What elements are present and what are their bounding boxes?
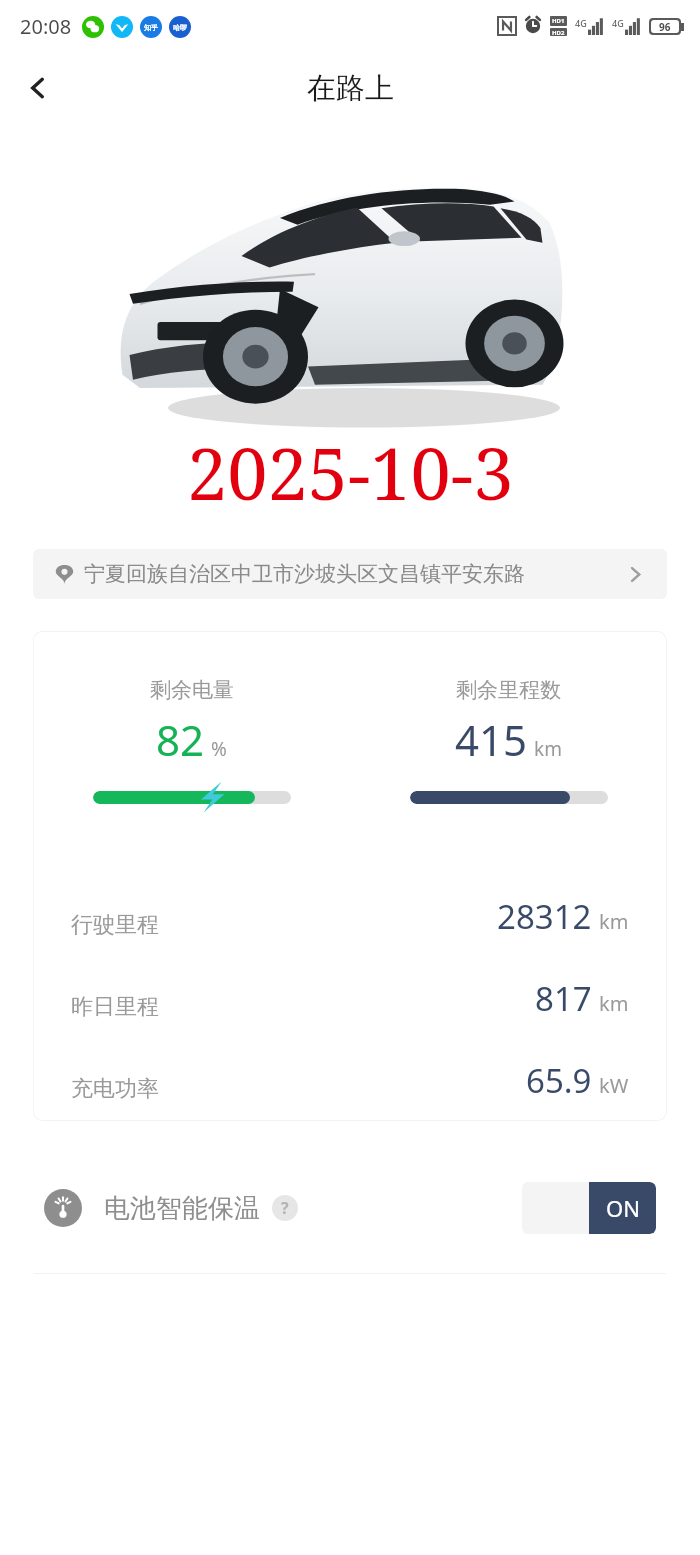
staticText: 宁夏回族自治区中卫市沙坡头区文昌镇平安东路 — [84, 561, 525, 587]
button[interactable]: Help — [272, 1195, 298, 1221]
staticText: 28312 — [497, 894, 592, 939]
staticText: 82 — [156, 711, 205, 768]
staticText: 行驶里程 — [71, 911, 159, 939]
staticText: 充电功率 — [71, 1075, 159, 1103]
staticText: HD1 — [552, 17, 565, 25]
staticText: 817 — [535, 976, 592, 1021]
staticText: ? — [281, 1197, 289, 1219]
staticText: km — [534, 736, 562, 762]
staticText: 415 — [455, 711, 528, 768]
staticText: 剩余里程数 — [456, 677, 561, 703]
staticText: 知乎 — [144, 23, 158, 32]
staticText: 4G — [612, 17, 624, 29]
staticText: HD2 — [552, 29, 565, 35]
staticText: ON — [606, 1193, 640, 1223]
staticText: % — [211, 736, 227, 762]
staticText: 65.9 — [526, 1058, 592, 1103]
staticText: 昨日里程 — [71, 993, 159, 1021]
button[interactable]: Battery smart warming toggle, on — [522, 1182, 656, 1234]
button[interactable]: 宁夏回族自治区中卫市沙坡头区文昌镇平安东路 — [33, 549, 667, 599]
staticText: 96 — [659, 20, 671, 33]
staticText: kW — [599, 1072, 629, 1099]
staticText: 剩余电量 — [150, 677, 234, 703]
staticText: 20:08 — [20, 13, 72, 40]
button[interactable]: Back — [12, 62, 64, 114]
staticText: 2025-10-3 — [187, 423, 514, 521]
staticText: km — [599, 908, 629, 935]
staticText: km — [599, 990, 629, 1017]
staticText: 4G — [575, 17, 587, 29]
staticText: 电池智能保温 — [104, 1192, 260, 1225]
staticText: 在路上 — [307, 70, 394, 107]
staticText: 哈啰 — [173, 23, 187, 32]
